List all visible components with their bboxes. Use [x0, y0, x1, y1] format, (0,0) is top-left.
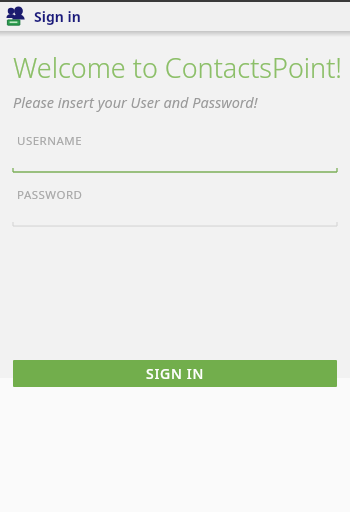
button[interactable]: SIGN IN [13, 360, 337, 387]
staticText: Please insert your User and Password! [13, 92, 258, 112]
staticText: PASSWORD [17, 187, 83, 203]
other: ContactsPoint [5, 5, 29, 29]
staticText: Welcome to ContactsPoint! [13, 49, 342, 86]
button[interactable]: PASSWORD [0, 183, 350, 229]
staticText: USERNAME [17, 133, 83, 149]
staticText: SIGN IN [146, 364, 205, 383]
staticText: Sign in [34, 7, 81, 26]
button[interactable]: USERNAME [0, 129, 350, 175]
